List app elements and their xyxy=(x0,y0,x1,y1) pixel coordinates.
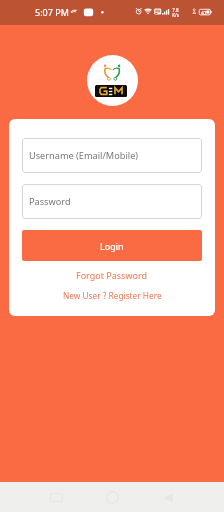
staticText: New User ? Register Here xyxy=(63,290,162,301)
staticText: Login xyxy=(100,240,124,252)
staticText: 5:07 PM xyxy=(35,6,69,18)
button[interactable]: Forgot Password xyxy=(22,266,202,283)
button[interactable]: New User ? Register Here xyxy=(22,287,202,304)
button[interactable]: Username (Email/Mobile) xyxy=(22,138,202,173)
button[interactable]: Login xyxy=(22,230,202,261)
staticText: Forgot Password xyxy=(76,269,148,281)
staticText: Username (Email/Mobile) xyxy=(29,149,139,162)
button[interactable]: Password xyxy=(22,184,202,219)
staticText: 47 xyxy=(201,10,207,17)
staticText: 7.8 K/s xyxy=(172,7,179,18)
staticText: Password xyxy=(29,195,71,208)
